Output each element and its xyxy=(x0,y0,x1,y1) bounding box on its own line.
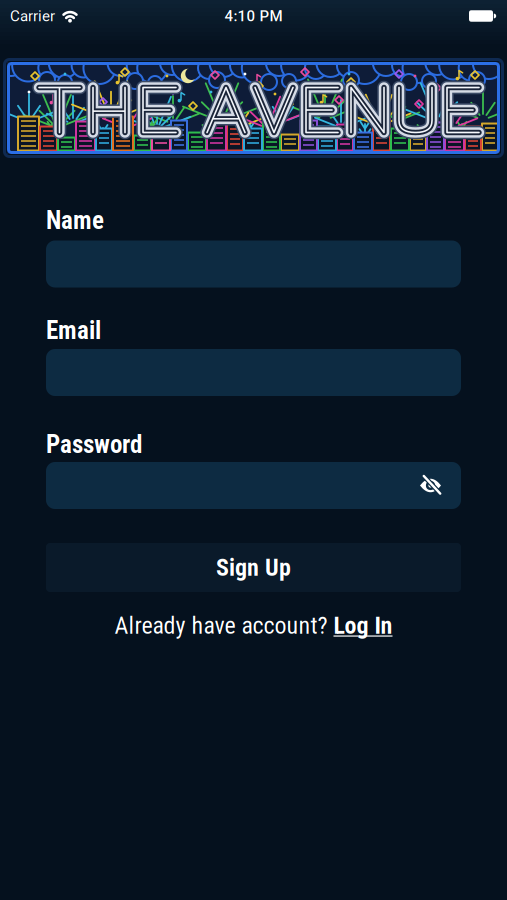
staticText: Password xyxy=(46,430,142,459)
staticText: Carrier xyxy=(10,7,55,25)
button[interactable] xyxy=(419,474,461,497)
button[interactable]: Log In xyxy=(333,611,392,639)
staticText: 4:10 PM xyxy=(224,7,282,25)
staticText: Already have account? xyxy=(114,611,333,639)
button[interactable]: Sign Up xyxy=(46,543,461,592)
staticText: Log In xyxy=(333,611,392,639)
button[interactable] xyxy=(46,240,461,287)
button[interactable] xyxy=(46,462,461,509)
staticText: Sign Up xyxy=(216,553,291,581)
staticText: Email xyxy=(46,316,101,345)
staticText: Name xyxy=(46,206,104,235)
